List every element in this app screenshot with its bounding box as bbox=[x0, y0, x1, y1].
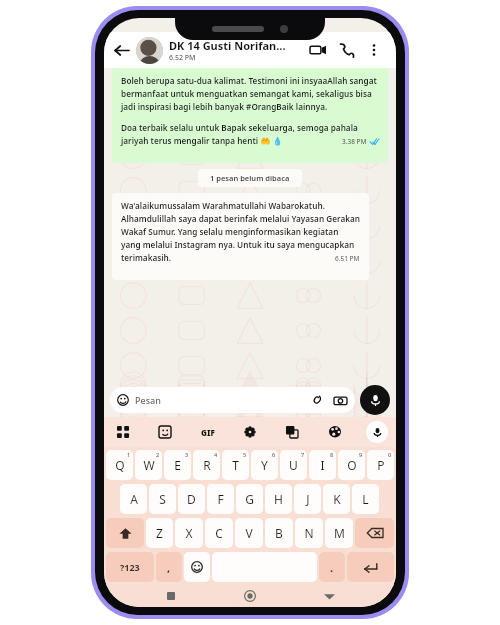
button[interactable]: Pesan bbox=[110, 387, 355, 413]
button[interactable]: D bbox=[178, 484, 205, 514]
button[interactable] bbox=[212, 552, 317, 582]
button[interactable]: Voice message bbox=[360, 385, 390, 415]
staticText: R bbox=[203, 457, 211, 473]
staticText: M bbox=[334, 525, 345, 541]
button[interactable]: U bbox=[280, 450, 307, 480]
button[interactable]: R bbox=[193, 450, 220, 480]
staticText: Z bbox=[156, 525, 163, 541]
staticText: C bbox=[215, 525, 223, 541]
staticText: Q bbox=[115, 457, 125, 473]
staticText: GIF bbox=[201, 427, 215, 438]
staticText: 7 bbox=[301, 451, 305, 458]
button[interactable]: V bbox=[235, 518, 263, 548]
button[interactable]: O bbox=[338, 450, 365, 480]
button[interactable]: Attach bbox=[309, 392, 325, 408]
button[interactable]: Comma bbox=[156, 552, 182, 582]
staticText: 6 bbox=[272, 451, 276, 458]
button[interactable]: J bbox=[294, 484, 321, 514]
staticText: S bbox=[159, 491, 166, 507]
button[interactable]: G bbox=[236, 484, 263, 514]
button[interactable]: M bbox=[325, 518, 353, 548]
staticText: 3.38 PM bbox=[342, 137, 367, 146]
staticText: X bbox=[185, 525, 193, 541]
staticText: 1 bbox=[127, 451, 131, 458]
button[interactable]: Translate bbox=[281, 421, 303, 443]
staticText: O bbox=[347, 457, 357, 473]
staticText: DK 14 Gusti Norifan... bbox=[169, 38, 286, 53]
button[interactable]: Period bbox=[319, 552, 345, 582]
staticText: ?123 bbox=[120, 561, 140, 573]
button[interactable]: Q bbox=[106, 450, 133, 480]
staticText: H bbox=[274, 491, 283, 507]
button[interactable]: W bbox=[135, 450, 162, 480]
staticText: Y bbox=[261, 457, 268, 473]
button[interactable]: Enter bbox=[347, 552, 394, 582]
button[interactable]: Voice call bbox=[332, 36, 360, 64]
button[interactable]: Back bbox=[108, 37, 134, 63]
button[interactable]: N bbox=[295, 518, 323, 548]
button[interactable]: Back bbox=[317, 585, 341, 607]
button[interactable]: T bbox=[222, 450, 249, 480]
staticText: F bbox=[217, 491, 224, 507]
staticText: V bbox=[245, 525, 253, 541]
staticText: 9 bbox=[359, 451, 363, 458]
staticText: I bbox=[320, 457, 325, 473]
staticText: D bbox=[187, 491, 196, 507]
staticText: U bbox=[289, 457, 298, 473]
staticText: Pesan bbox=[135, 394, 161, 406]
button[interactable]: B bbox=[265, 518, 293, 548]
button[interactable]: Boleh berupa satu-dua kalimat. Testimoni… bbox=[112, 68, 388, 163]
staticText: . bbox=[330, 560, 334, 575]
staticText: 0 bbox=[388, 451, 392, 458]
staticText: B bbox=[275, 525, 283, 541]
staticText: 8 bbox=[330, 451, 334, 458]
button[interactable]: DK 14 Gusti Norifan... bbox=[169, 38, 304, 63]
button[interactable]: Video call bbox=[304, 36, 332, 64]
button[interactable]: Backspace bbox=[355, 518, 394, 548]
staticText: T bbox=[232, 457, 239, 473]
button[interactable]: Apps bbox=[112, 421, 134, 443]
button[interactable]: Settings bbox=[239, 421, 261, 443]
button[interactable]: X bbox=[175, 518, 203, 548]
button[interactable]: C bbox=[205, 518, 233, 548]
staticText: W bbox=[143, 457, 155, 473]
button[interactable]: Theme bbox=[324, 421, 346, 443]
staticText: 3 bbox=[185, 451, 189, 458]
staticText: A bbox=[130, 491, 138, 507]
button[interactable]: Stickers bbox=[154, 421, 176, 443]
button[interactable]: Y bbox=[251, 450, 278, 480]
staticText: J bbox=[306, 491, 310, 507]
button[interactable]: Home bbox=[238, 585, 262, 607]
button[interactable]: E bbox=[164, 450, 191, 480]
button[interactable]: GIF bbox=[197, 421, 219, 443]
button[interactable]: Camera bbox=[332, 392, 348, 408]
button[interactable]: Shift bbox=[106, 518, 144, 548]
staticText: P bbox=[377, 457, 385, 473]
button[interactable]: Emoji bbox=[184, 552, 210, 582]
button[interactable]: Wa'alaikumussalam Warahmatullahi Wabarok… bbox=[112, 193, 369, 280]
button[interactable]: Symbols bbox=[106, 552, 154, 582]
button[interactable]: P bbox=[367, 450, 394, 480]
staticText: 1 pesan belum dibaca bbox=[210, 173, 290, 183]
staticText: Boleh berupa satu-dua kalimat. Testimoni… bbox=[121, 75, 379, 113]
button[interactable]: Z bbox=[146, 518, 173, 548]
button[interactable]: Voice input bbox=[366, 421, 388, 443]
button[interactable]: F bbox=[207, 484, 234, 514]
button[interactable]: S bbox=[149, 484, 176, 514]
staticText: G bbox=[245, 491, 254, 507]
button[interactable]: K bbox=[323, 484, 350, 514]
staticText: 4 bbox=[214, 451, 218, 458]
staticText: E bbox=[174, 457, 181, 473]
button[interactable]: L bbox=[352, 484, 379, 514]
staticText: 6.52 PM bbox=[169, 53, 196, 63]
staticText: K bbox=[333, 491, 341, 507]
button[interactable]: Recents bbox=[159, 585, 183, 607]
button[interactable]: I bbox=[309, 450, 336, 480]
button[interactable]: More options bbox=[360, 36, 388, 64]
staticText: 6.51 PM bbox=[335, 254, 360, 263]
button[interactable]: H bbox=[265, 484, 292, 514]
staticText: , bbox=[167, 560, 171, 575]
button[interactable]: A bbox=[120, 484, 147, 514]
staticText: L bbox=[362, 491, 369, 507]
staticText: N bbox=[304, 525, 314, 541]
